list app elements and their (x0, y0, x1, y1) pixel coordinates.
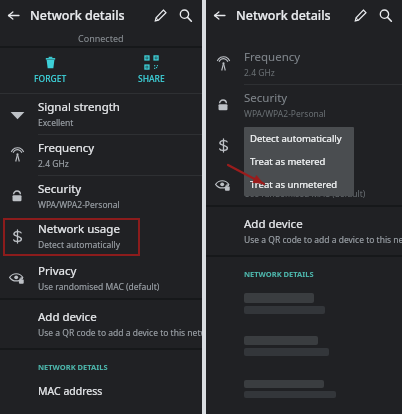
button[interactable]: Search (172, 2, 198, 28)
button[interactable]: Edit (348, 3, 372, 27)
staticText: Treat as unmetered (250, 178, 338, 191)
button[interactable]: Signal strength (0, 94, 202, 134)
staticText: Privacy (38, 263, 77, 279)
button[interactable]: Privacy (206, 165, 402, 205)
staticText: Detect automatically (244, 148, 327, 160)
button[interactable]: Frequency (206, 44, 402, 84)
button[interactable]: Back (0, 2, 26, 28)
staticText: Excellent (38, 117, 74, 129)
staticText: Network details (236, 7, 348, 24)
button[interactable]: Security (206, 85, 402, 125)
staticText: 2.4 GHz (38, 158, 69, 170)
staticText: Add device (244, 216, 303, 232)
staticText: WPA/WPA2-Personal (244, 108, 326, 120)
staticText: Detect automatically (250, 132, 342, 145)
staticText: Privacy (244, 170, 283, 186)
staticText: Use a QR code to add a device to this ne… (38, 327, 221, 339)
staticText: NETWORK DETAILS (38, 362, 108, 372)
staticText: NETWORK DETAILS (244, 269, 314, 279)
staticText: Network usage (38, 221, 120, 237)
button[interactable]: Edit (148, 3, 172, 27)
button[interactable]: Back (206, 2, 232, 28)
button[interactable]: Network usage (0, 216, 202, 256)
button[interactable]: Frequency (0, 135, 202, 175)
staticText: Security (244, 90, 288, 106)
button[interactable]: Search (372, 2, 398, 28)
staticText: Network details (30, 7, 148, 24)
staticText: Use randomised MAC (default) (38, 281, 160, 293)
button[interactable]: Network usage (206, 125, 402, 165)
staticText: Frequency (244, 49, 301, 65)
staticText: Use a QR code to add a device to this ne… (244, 234, 402, 246)
staticText: Connected (78, 32, 124, 44)
button[interactable]: SHARE (101, 48, 202, 93)
staticText: 2.4 GHz (244, 67, 275, 79)
staticText: MAC address (38, 384, 103, 398)
button[interactable]: Security (0, 176, 202, 216)
button[interactable]: Detect automatically (244, 127, 354, 150)
button[interactable]: Add device (0, 300, 202, 348)
button[interactable]: Treat as unmetered (244, 173, 354, 196)
staticText: WPA/WPA2-Personal (38, 199, 120, 211)
staticText: Detect automatically (38, 239, 121, 251)
staticText: Frequency (38, 140, 95, 156)
button[interactable]: Treat as metered (244, 150, 354, 173)
staticText: Use randomised MAC (default) (244, 188, 366, 200)
staticText: Network usage (244, 130, 326, 146)
button[interactable]: FORGET (0, 48, 101, 93)
staticText: Add device (38, 309, 97, 325)
staticText: Signal strength (38, 99, 120, 115)
staticText: Security (38, 181, 82, 197)
staticText: Treat as metered (250, 155, 326, 168)
button[interactable]: Add device (206, 207, 402, 255)
button[interactable]: Privacy (0, 258, 202, 298)
staticText: FORGET (34, 73, 67, 85)
staticText: SHARE (138, 73, 165, 85)
